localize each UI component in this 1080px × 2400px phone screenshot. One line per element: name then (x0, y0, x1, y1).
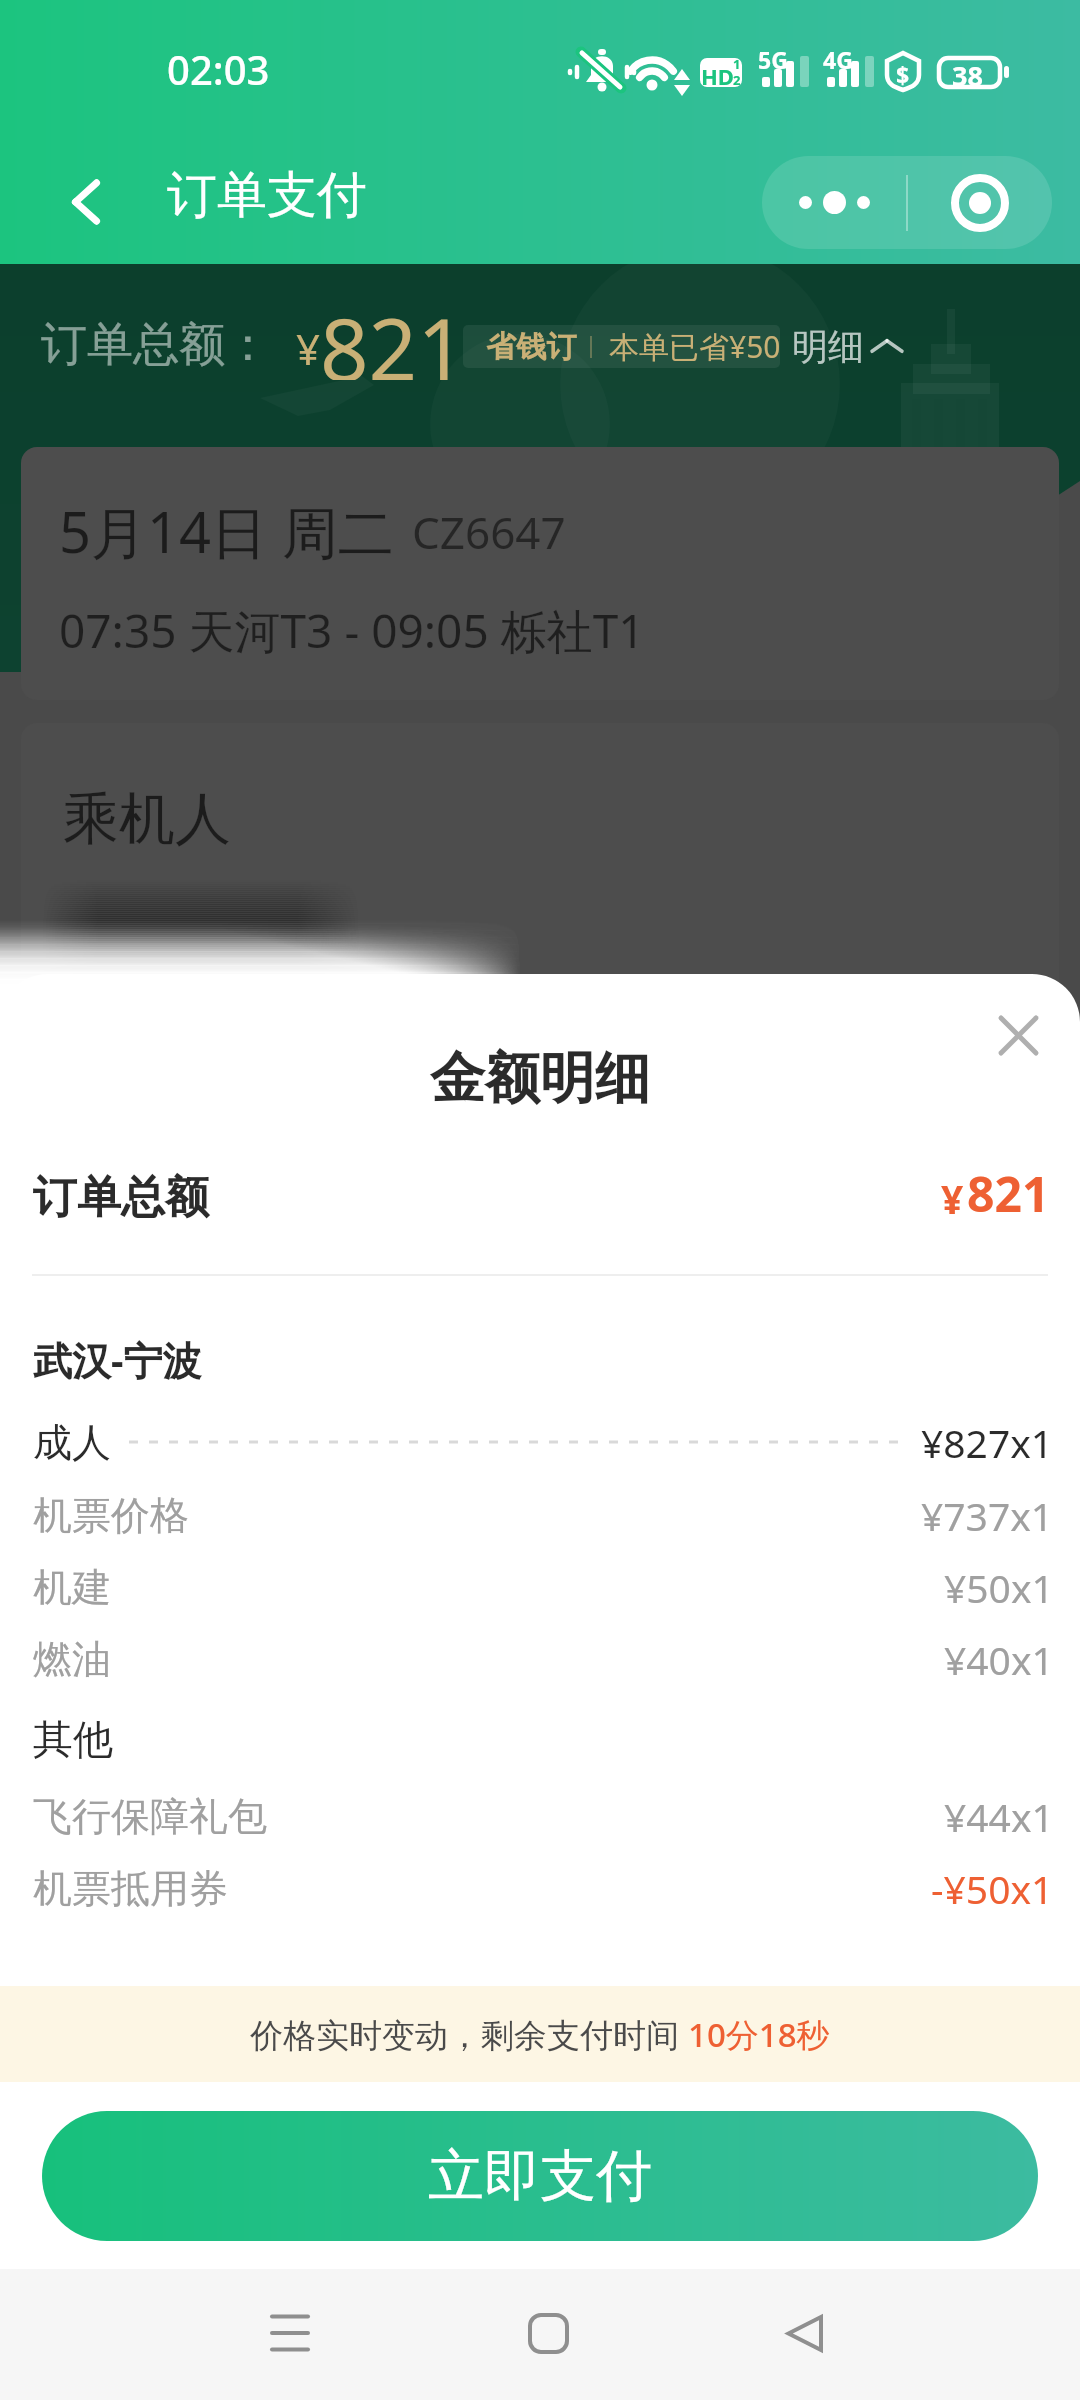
staticText: ¥737x1 (921, 1489, 1054, 1542)
staticText: ¥ (296, 320, 321, 377)
staticText: 省钱订 (486, 328, 577, 366)
staticText: 821 (320, 290, 466, 380)
staticText: 订单总额 (33, 1170, 209, 1225)
staticText: 2 (733, 71, 741, 89)
staticText: 立即支付 (428, 2141, 652, 2212)
staticText: CZ6647 (412, 502, 566, 562)
button[interactable]: 更多 (762, 156, 906, 249)
staticText: $ (896, 59, 910, 90)
button[interactable]: 返回 (765, 2293, 845, 2373)
staticText: 1 (733, 55, 741, 73)
button[interactable]: 主屏幕 (508, 2293, 588, 2373)
staticText: 其他 (33, 1714, 113, 1764)
staticText: 机票抵用券 (33, 1864, 228, 1913)
staticText: 订单总额： (41, 316, 271, 374)
staticText: HD (701, 61, 734, 91)
staticText: ¥50x1 (944, 1561, 1054, 1614)
staticText: 5G (758, 44, 788, 75)
staticText: ¥40x1 (944, 1633, 1054, 1686)
staticText: 明细 (792, 324, 864, 369)
staticText: 金额明细 (430, 1044, 650, 1113)
staticText: 飞行保障礼包 (33, 1792, 267, 1841)
staticText: 4G (823, 44, 853, 75)
staticText: 燃油 (33, 1635, 111, 1684)
staticText: 武汉-宁波 (33, 1333, 202, 1386)
staticText: ¥ (941, 1172, 964, 1225)
staticText: ¥827x1 (921, 1416, 1054, 1469)
staticText: 机建 (33, 1563, 111, 1612)
staticText: 10分18秒 (688, 2012, 830, 2057)
staticText: 02:03 (167, 42, 270, 96)
staticText: -¥50x1 (931, 1862, 1054, 1915)
staticText: 07:35 天河T3 - 09:05 栎社T1 (59, 599, 645, 662)
button[interactable]: 最近任务 (250, 2293, 330, 2373)
staticText: 38 (952, 57, 983, 94)
button[interactable]: 关闭 (978, 995, 1058, 1075)
staticText: 乘机人 (63, 784, 231, 855)
button[interactable]: 返回 (48, 164, 124, 240)
staticText: 机票价格 (33, 1491, 189, 1540)
staticText: 5月14日 周二 (59, 493, 394, 569)
staticText: 订单支付 (167, 164, 367, 227)
staticText: 成人 (33, 1418, 111, 1467)
button[interactable]: 关闭小程序 (908, 156, 1052, 249)
staticText: 价格实时变动，剩余支付时间 (250, 2012, 688, 2057)
staticText: 本单已省¥50 (609, 326, 780, 367)
button[interactable]: 立即支付 (42, 2111, 1038, 2241)
staticText: ¥44x1 (944, 1790, 1054, 1843)
staticText: 821 (967, 1161, 1050, 1226)
